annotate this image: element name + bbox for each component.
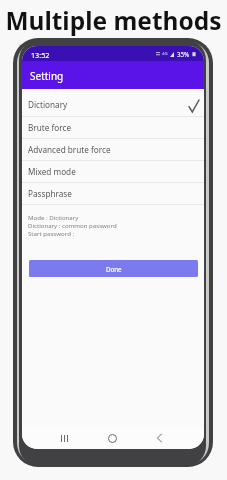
staticText: Dictionary : common password (28, 221, 117, 229)
staticText: Advanced brute force (28, 144, 204, 155)
staticText: 4G (162, 51, 168, 57)
button[interactable]: Back (144, 429, 174, 447)
staticText: Brute force (28, 122, 204, 133)
button[interactable]: Dictionary (22, 89, 204, 116)
staticText: Done (106, 265, 122, 273)
button[interactable]: Recent apps (49, 429, 79, 447)
staticText: Dictionary (28, 99, 200, 110)
staticText: Passphrase (28, 188, 204, 199)
button[interactable]: Mixed mode (22, 161, 204, 182)
button[interactable]: Done (29, 260, 198, 277)
button[interactable]: Home (97, 429, 127, 447)
staticText: 13:52 (31, 50, 50, 60)
staticText: Setting (30, 69, 64, 83)
staticText: Multiple methods (0, 4, 227, 37)
staticText: Mixed mode (28, 166, 204, 177)
staticText: Start password : (28, 229, 75, 237)
button[interactable]: Passphrase (22, 183, 204, 204)
button[interactable]: Brute force (22, 117, 204, 138)
button[interactable]: Advanced brute force (22, 139, 204, 160)
staticText: 35% (177, 50, 190, 58)
staticText: Mode : Dictionary (28, 213, 79, 221)
